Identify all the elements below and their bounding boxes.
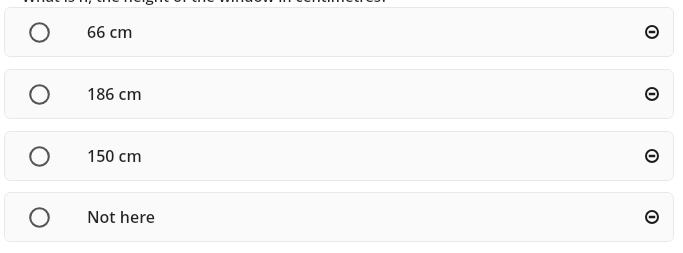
staticText: What is h, the height of the window in c… [22, 0, 388, 6]
button[interactable]: Remove this option [634, 14, 670, 50]
button[interactable]: Remove this option [634, 199, 670, 235]
button[interactable]: 186 cm [4, 69, 674, 119]
button[interactable]: Remove this option [634, 76, 670, 112]
staticText: 150 cm [87, 145, 142, 167]
button[interactable]: 150 cm [4, 131, 674, 181]
button[interactable]: Not here [4, 192, 674, 242]
staticText: Not here [87, 206, 155, 228]
staticText: 186 cm [87, 83, 142, 105]
button[interactable]: Remove this option [634, 138, 670, 174]
button[interactable]: 66 cm [4, 7, 674, 57]
staticText: 66 cm [87, 21, 133, 43]
